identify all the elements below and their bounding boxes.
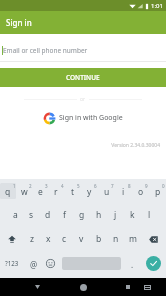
button[interactable]: Home — [74, 278, 92, 296]
staticText: Version 2.34.0.30004 — [0, 142, 160, 149]
button[interactable]: CONTINUE — [0, 68, 166, 87]
button[interactable]: j — [107, 203, 124, 227]
button[interactable]: o — [132, 183, 149, 199]
staticText: g — [79, 209, 85, 221]
staticText: m — [129, 233, 137, 245]
staticText: or — [80, 96, 86, 103]
staticText: n — [113, 233, 119, 245]
button[interactable]: v — [73, 227, 90, 251]
button[interactable]: e — [32, 183, 48, 199]
button[interactable]: h — [90, 203, 107, 227]
staticText: 5 — [77, 183, 80, 189]
staticText: @ — [30, 259, 38, 270]
staticText: 1 — [13, 183, 16, 189]
staticText: u — [104, 186, 110, 198]
staticText: e — [38, 186, 43, 198]
button[interactable]: m — [124, 227, 141, 251]
button[interactable]: c — [56, 227, 73, 251]
staticText: p — [155, 186, 161, 198]
button[interactable]: x — [40, 227, 56, 251]
button[interactable]: Shift — [0, 227, 24, 251]
staticText: v — [79, 233, 84, 245]
staticText: ?123 — [5, 259, 19, 267]
staticText: x — [46, 233, 51, 245]
button[interactable]: q — [0, 183, 16, 199]
staticText: Sign in — [6, 17, 32, 28]
button[interactable]: Emoji — [44, 251, 56, 275]
staticText: 9 — [145, 183, 148, 189]
staticText: 6 — [94, 183, 97, 189]
button[interactable]: r — [48, 183, 64, 199]
button[interactable]: l — [141, 203, 158, 227]
button[interactable]: g — [73, 203, 90, 227]
staticText: r — [54, 186, 58, 198]
staticText: 1:01 — [151, 2, 163, 10]
staticText: d — [45, 209, 51, 221]
staticText: 0 — [162, 183, 165, 189]
button[interactable]: y — [81, 183, 98, 199]
staticText: Email or cell phone number — [3, 46, 88, 55]
staticText: z — [30, 233, 34, 245]
button[interactable]: p — [149, 183, 166, 199]
staticText: c — [62, 233, 67, 245]
staticText: t — [71, 186, 75, 198]
staticText: o — [138, 186, 144, 198]
staticText: q — [5, 186, 11, 198]
staticText: 3 — [45, 183, 48, 189]
button[interactable]: w — [16, 183, 32, 199]
button[interactable]: @ — [23, 251, 44, 275]
staticText: i — [122, 186, 125, 198]
staticText: f — [63, 209, 66, 221]
staticText: h — [96, 209, 102, 221]
button[interactable]: Switch keyboard — [138, 278, 156, 296]
button[interactable]: s — [23, 203, 39, 227]
staticText: 8 — [128, 183, 131, 189]
button[interactable]: z — [24, 227, 40, 251]
staticText: CONTINUE — [66, 73, 100, 82]
staticText: s — [29, 209, 34, 221]
staticText: 2 — [29, 183, 32, 189]
button[interactable]: f — [56, 203, 73, 227]
button[interactable]: Back — [28, 278, 46, 296]
button[interactable]: a — [7, 203, 23, 227]
staticText: a — [13, 209, 18, 221]
button[interactable]: . — [124, 251, 140, 275]
staticText: 7 — [111, 183, 114, 189]
staticText: k — [130, 209, 135, 221]
staticText: j — [114, 209, 117, 221]
staticText: 4 — [61, 183, 64, 189]
button[interactable]: Recents — [119, 278, 137, 296]
button[interactable]: Backspace — [141, 227, 166, 251]
button[interactable]: ?123 — [0, 251, 22, 275]
staticText: Sign in with Google — [59, 113, 123, 123]
staticText: l — [148, 209, 151, 221]
staticText: w — [21, 186, 28, 198]
button[interactable]: k — [124, 203, 141, 227]
staticText: b — [96, 233, 102, 245]
staticText: . — [131, 259, 134, 270]
button[interactable]: t — [64, 183, 81, 199]
button[interactable]: n — [107, 227, 124, 251]
button[interactable]: Enter — [146, 256, 161, 271]
staticText: y — [87, 186, 92, 198]
button[interactable]: u — [98, 183, 115, 199]
button[interactable]: d — [39, 203, 56, 227]
button[interactable]: b — [90, 227, 107, 251]
button[interactable]: Sign in — [0, 11, 166, 34]
button[interactable]: Sign in with Google — [0, 110, 166, 126]
button[interactable]: i — [115, 183, 132, 199]
